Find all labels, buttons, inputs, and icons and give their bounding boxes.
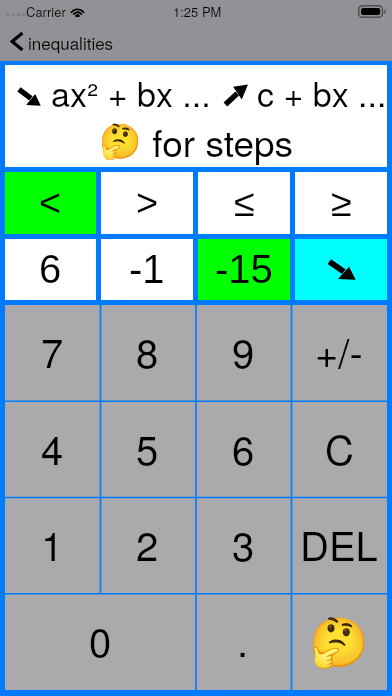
staticText: -1: [129, 247, 165, 292]
button[interactable]: 0: [5, 594, 195, 690]
staticText: 🤔: [99, 121, 142, 161]
button[interactable]: 7: [5, 305, 100, 402]
button[interactable]: 8: [100, 305, 195, 402]
staticText: 🤔: [309, 614, 369, 670]
staticText: c + bx ...: [257, 68, 387, 117]
button[interactable]: Back: [11, 22, 114, 61]
staticText: 1:25 PM: [173, 2, 222, 21]
button[interactable]: 2: [100, 498, 195, 594]
button[interactable]: 6: [5, 239, 96, 300]
staticText: >: [136, 182, 159, 224]
staticText: ax² + bx ...: [51, 68, 211, 117]
button[interactable]: 1: [5, 498, 100, 594]
button[interactable]: 3: [195, 498, 291, 594]
button[interactable]: -15: [198, 239, 290, 300]
button[interactable]: <: [5, 172, 96, 234]
button[interactable]: ax² + bx ...: [5, 65, 387, 167]
button[interactable]: -1: [101, 239, 193, 300]
staticText: C: [325, 419, 354, 476]
staticText: for steps: [142, 115, 294, 168]
other: Back: [11, 32, 23, 51]
staticText: .: [237, 611, 249, 668]
button[interactable]: ≥: [295, 172, 387, 234]
staticText: ≥: [331, 182, 352, 224]
staticText: <: [39, 182, 62, 224]
staticText: 1: [41, 515, 64, 572]
staticText: 8: [136, 322, 159, 379]
button[interactable]: 4: [5, 402, 100, 498]
button[interactable]: 5: [100, 402, 195, 498]
staticText: +/-: [315, 322, 363, 379]
button[interactable]: Backspace: [295, 239, 387, 300]
staticText: 6: [232, 419, 255, 476]
staticText: inequalities: [28, 30, 114, 54]
button[interactable]: +/-: [291, 305, 387, 402]
button[interactable]: C: [291, 402, 387, 498]
button[interactable]: 9: [195, 305, 291, 402]
staticText: 5: [136, 419, 159, 476]
button[interactable]: .: [195, 594, 291, 690]
button[interactable]: >: [101, 172, 193, 234]
staticText: ≤: [234, 182, 255, 224]
button[interactable]: Show steps: [291, 594, 387, 690]
button[interactable]: ≤: [198, 172, 290, 234]
staticText: 3: [232, 515, 255, 572]
button[interactable]: DEL: [291, 498, 387, 594]
staticText: 0: [89, 611, 112, 668]
staticText: Carrier: [26, 2, 66, 21]
button[interactable]: 6: [195, 402, 291, 498]
staticText: 6: [39, 247, 62, 292]
staticText: 7: [41, 322, 64, 379]
staticText: 4: [41, 419, 64, 476]
staticText: -15: [215, 247, 273, 292]
staticText: 9: [232, 322, 255, 379]
staticText: DEL: [300, 515, 378, 572]
staticText: 2: [136, 515, 159, 572]
